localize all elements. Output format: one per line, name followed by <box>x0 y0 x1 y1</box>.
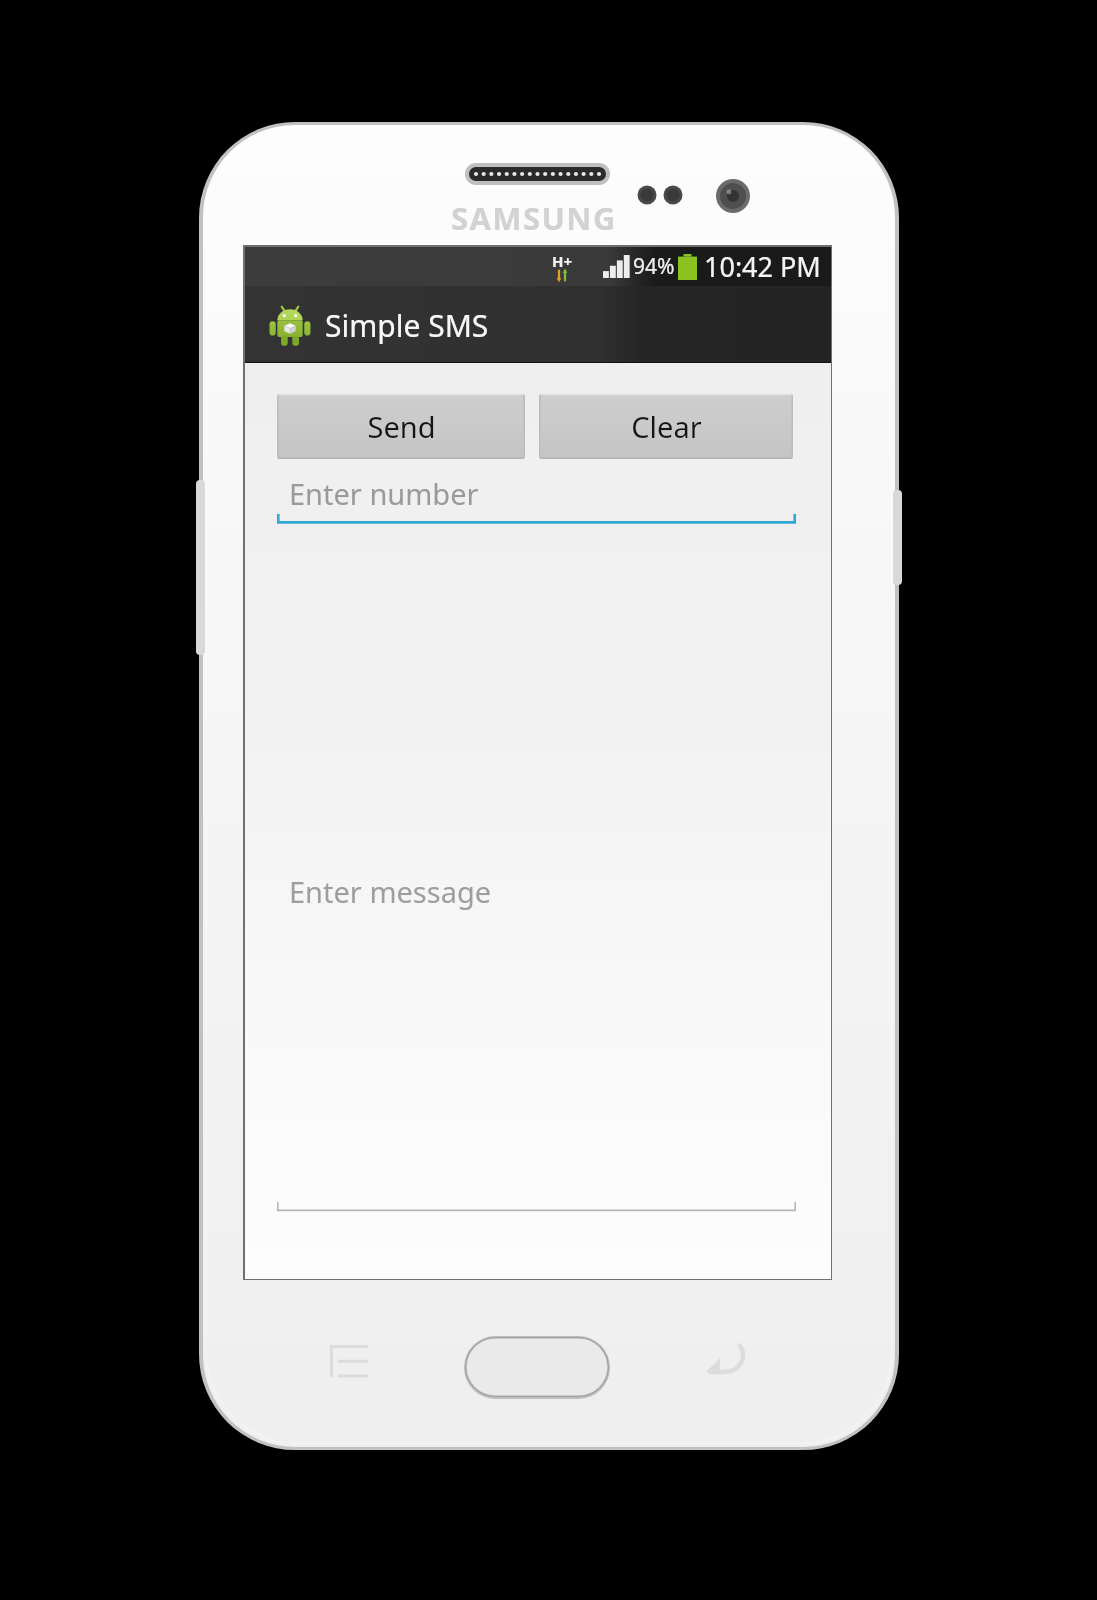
button[interactable]: Send <box>277 394 525 459</box>
button[interactable]: Clear <box>539 394 793 459</box>
staticText: Enter number <box>289 474 479 513</box>
button[interactable]: Enter message <box>277 525 796 1279</box>
staticText: 10:42 PM <box>704 248 821 285</box>
staticText: Send <box>367 407 436 446</box>
staticText: Simple SMS <box>325 305 489 346</box>
staticText: Clear <box>631 407 702 446</box>
staticText: SAMSUNG <box>451 197 617 239</box>
staticText: Enter message <box>289 872 492 911</box>
staticText: H+ <box>552 251 573 271</box>
button[interactable]: Enter number <box>277 471 796 515</box>
staticText: 94% <box>633 252 675 281</box>
